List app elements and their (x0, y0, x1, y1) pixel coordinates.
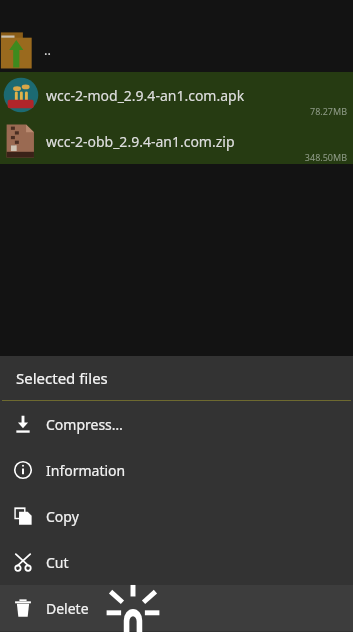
staticText: wcc-2-mod_2.9.4-an1.com.apk (46, 86, 245, 105)
staticText: Selected files (16, 368, 108, 388)
staticText: 78.27MB (309, 105, 347, 117)
button[interactable]: Copy (0, 493, 353, 539)
staticText: Copy (46, 507, 79, 526)
staticText: wcc-2-obb_2.9.4-an1.com.zip (46, 132, 235, 151)
staticText: 348.50MB (304, 151, 347, 163)
button[interactable]: Cut (0, 539, 353, 585)
button[interactable]: Compress… (0, 401, 353, 447)
button[interactable]: Delete (0, 585, 353, 631)
staticText: Cut (46, 553, 69, 572)
button[interactable]: wcc-2-mod_2.9.4-an1.com.apk (0, 72, 353, 118)
button[interactable]: .. (0, 28, 353, 72)
staticText: .. (44, 41, 51, 59)
button[interactable]: wcc-2-obb_2.9.4-an1.com.zip (0, 118, 353, 164)
staticText: Delete (46, 599, 89, 618)
staticText: Information (46, 461, 126, 480)
button[interactable]: Information (0, 447, 353, 493)
staticText: Compress… (46, 415, 123, 434)
